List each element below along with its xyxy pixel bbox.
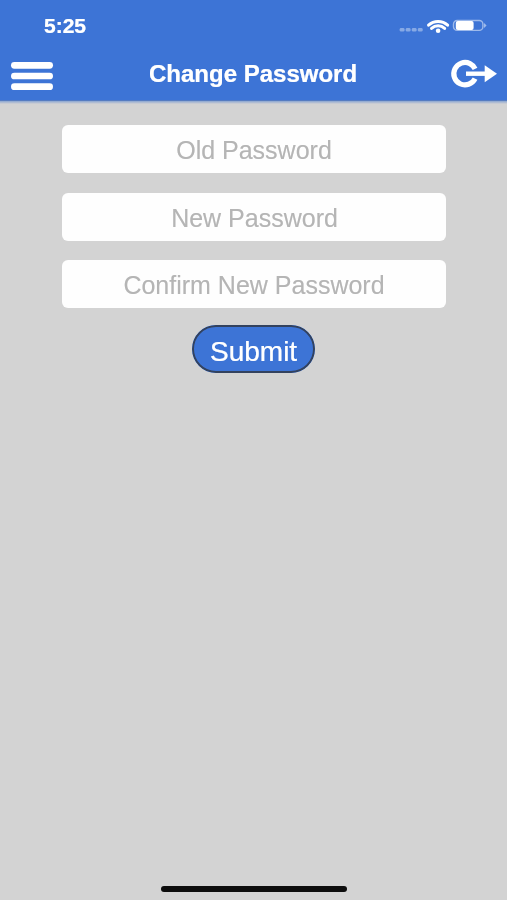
button[interactable]: Confirm New Password [62, 260, 446, 308]
staticText: New Password [171, 204, 338, 232]
staticText: Submit [210, 336, 298, 367]
button[interactable]: Menu [0, 51, 64, 101]
staticText: Old Password [176, 136, 332, 164]
button[interactable]: Logout [443, 50, 507, 101]
button[interactable]: Submit [192, 325, 315, 373]
staticText: Confirm New Password [123, 271, 385, 299]
staticText: Change Password [149, 60, 358, 87]
button[interactable]: New Password [62, 193, 446, 241]
staticText: 5:25 [44, 14, 87, 37]
button[interactable]: Old Password [62, 125, 446, 173]
